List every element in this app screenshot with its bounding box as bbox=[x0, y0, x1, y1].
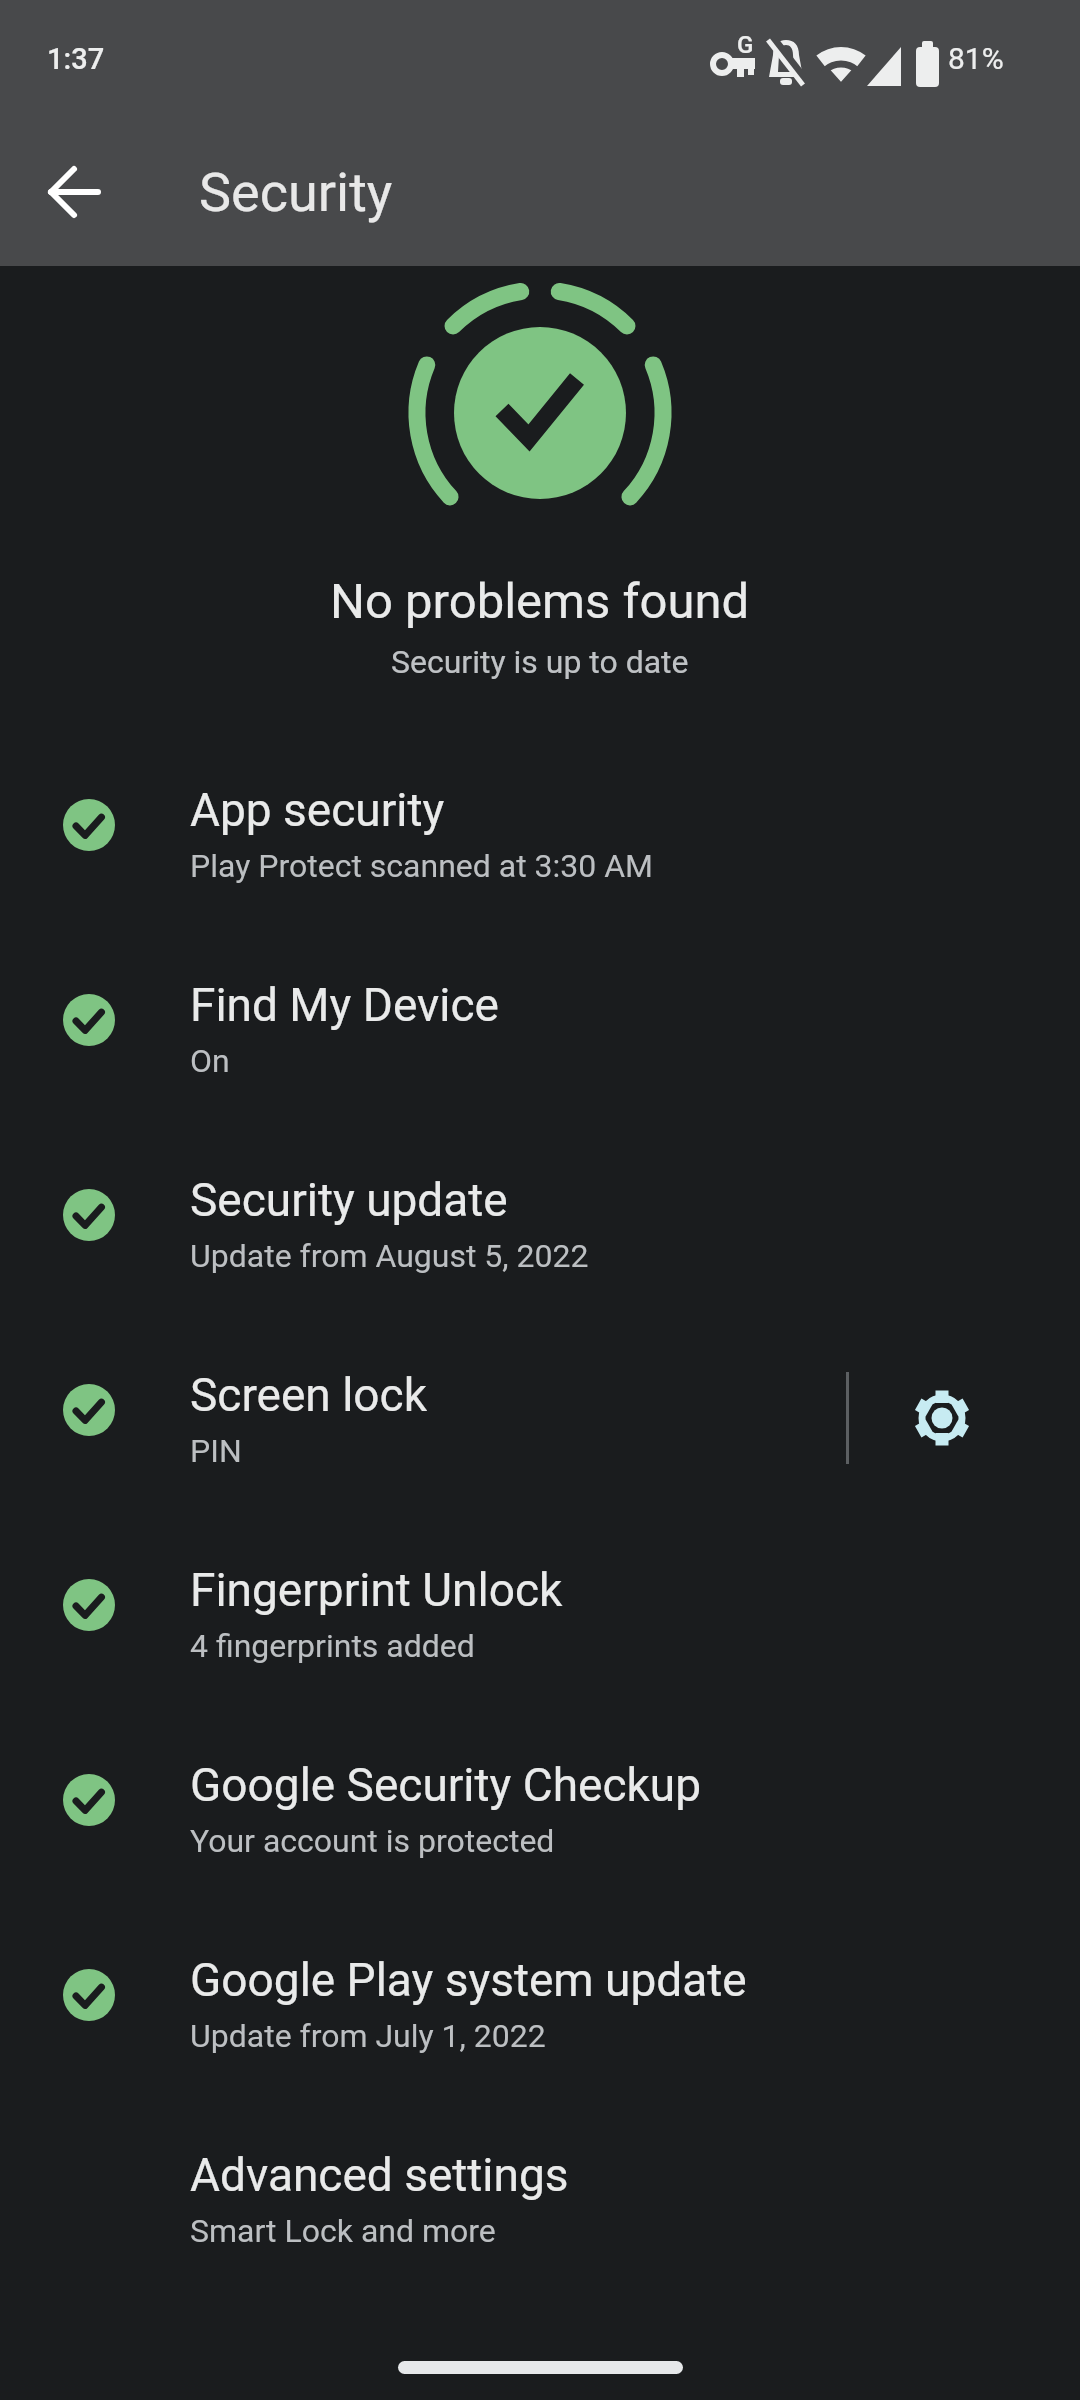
staticText: Security bbox=[199, 161, 393, 224]
staticText: G bbox=[737, 31, 754, 59]
button[interactable]: Security update bbox=[0, 1115, 1080, 1285]
staticText: 1:37 bbox=[47, 42, 105, 76]
staticText: No problems found bbox=[330, 573, 750, 630]
staticText: 81% bbox=[948, 41, 1004, 76]
staticText: Update from July 1, 2022 bbox=[190, 2017, 546, 2055]
staticText: Find My Device bbox=[190, 978, 499, 1032]
button[interactable]: Google Security Checkup bbox=[0, 1700, 1080, 1870]
staticText: PIN bbox=[190, 1432, 242, 1470]
button[interactable]: App security bbox=[0, 725, 1080, 895]
staticText: Security update bbox=[190, 1173, 508, 1227]
staticText: Security is up to date bbox=[391, 643, 689, 681]
button[interactable] bbox=[894, 1370, 990, 1466]
staticText: Advanced settings bbox=[190, 2148, 569, 2202]
staticText: Smart Lock and more bbox=[190, 2212, 496, 2250]
staticText: Fingerprint Unlock bbox=[190, 1563, 563, 1617]
staticText: Google Play system update bbox=[190, 1953, 747, 2007]
button[interactable]: Fingerprint Unlock bbox=[0, 1505, 1080, 1675]
staticText: Update from August 5, 2022 bbox=[190, 1237, 589, 1275]
staticText: Screen lock bbox=[190, 1368, 427, 1422]
staticText: Play Protect scanned at 3:30 AM bbox=[190, 847, 654, 885]
button[interactable]: Google Play system update bbox=[0, 1895, 1080, 2065]
staticText: App security bbox=[190, 783, 445, 837]
staticText: 4 fingerprints added bbox=[190, 1627, 475, 1665]
staticText: On bbox=[190, 1042, 230, 1080]
button[interactable]: Screen lock bbox=[0, 1310, 1080, 1480]
staticText: Your account is protected bbox=[190, 1822, 555, 1860]
staticText: Google Security Checkup bbox=[190, 1758, 702, 1812]
button[interactable]: Find My Device bbox=[0, 920, 1080, 1090]
button[interactable] bbox=[27, 144, 123, 240]
button[interactable]: Advanced settings bbox=[0, 2090, 1080, 2260]
